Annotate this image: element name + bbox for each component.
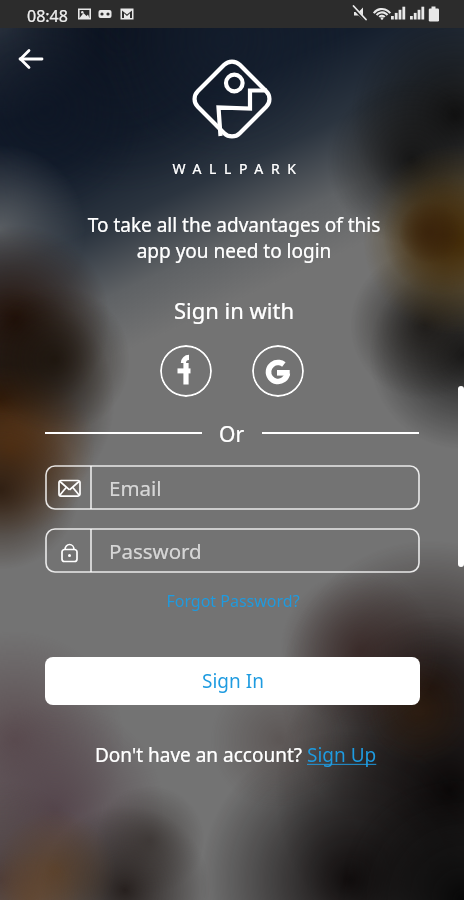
staticText: Or <box>219 420 245 446</box>
button[interactable]: Password <box>45 528 420 573</box>
staticText: Sign In <box>202 668 264 694</box>
button[interactable]: Sign In <box>45 657 420 705</box>
staticText: Password <box>109 537 202 565</box>
button[interactable]: Sign in with Facebook <box>160 345 212 397</box>
staticText: Email <box>109 474 162 502</box>
button[interactable]: Sign Up <box>307 742 377 768</box>
staticText: Sign in with <box>2 295 464 325</box>
staticText: WALLPARK <box>6 159 464 178</box>
staticText: To take all the advantages of this app y… <box>84 212 384 263</box>
staticText: Don't have an account? <box>95 742 307 768</box>
button[interactable]: Back <box>9 37 53 81</box>
button[interactable]: Sign in with Google <box>252 345 304 397</box>
staticText: 08:48 <box>27 5 68 27</box>
button[interactable]: Forgot Password? <box>1 590 464 612</box>
button[interactable]: Email <box>45 465 420 510</box>
